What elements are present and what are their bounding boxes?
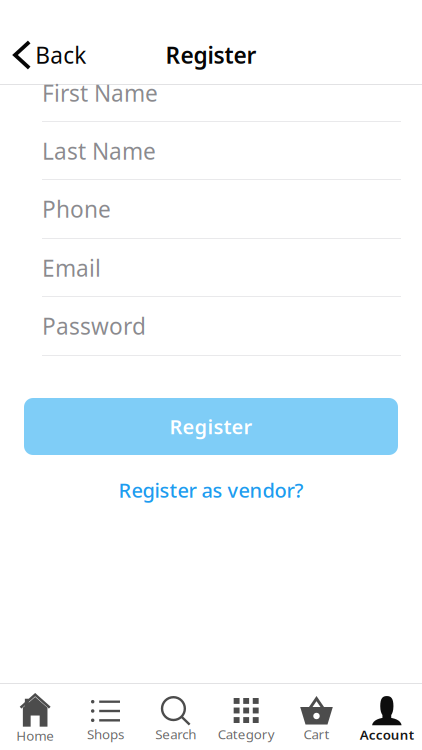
button[interactable]: Phone [42, 180, 401, 239]
staticText: Last Name [42, 136, 156, 166]
button[interactable]: Account [352, 684, 422, 750]
staticText: Account [360, 726, 414, 743]
button[interactable]: Register as vendor? [0, 475, 422, 505]
button[interactable]: Category [211, 684, 281, 750]
button[interactable]: Cart [281, 684, 352, 750]
staticText: Password [42, 311, 146, 341]
button[interactable]: Back [0, 33, 94, 77]
staticText: Register as vendor? [118, 477, 303, 503]
button[interactable]: Shops [70, 684, 141, 750]
staticText: Category [218, 725, 275, 743]
staticText: Email [42, 253, 101, 283]
button[interactable]: Register [24, 398, 398, 455]
button[interactable]: First Name [42, 85, 401, 122]
staticText: Back [35, 40, 86, 70]
staticText: Register [169, 413, 252, 440]
staticText: Register [165, 40, 256, 70]
staticText: Search [155, 725, 196, 743]
button[interactable]: Home [0, 684, 70, 750]
button[interactable]: Password [42, 297, 401, 356]
staticText: Shops [87, 725, 124, 743]
button[interactable]: Email [42, 239, 401, 297]
staticText: First Name [42, 78, 158, 108]
staticText: Phone [42, 194, 111, 224]
button[interactable]: Search [141, 684, 211, 750]
staticText: Cart [303, 725, 329, 743]
button[interactable]: Last Name [42, 122, 401, 180]
staticText: Home [16, 727, 54, 744]
